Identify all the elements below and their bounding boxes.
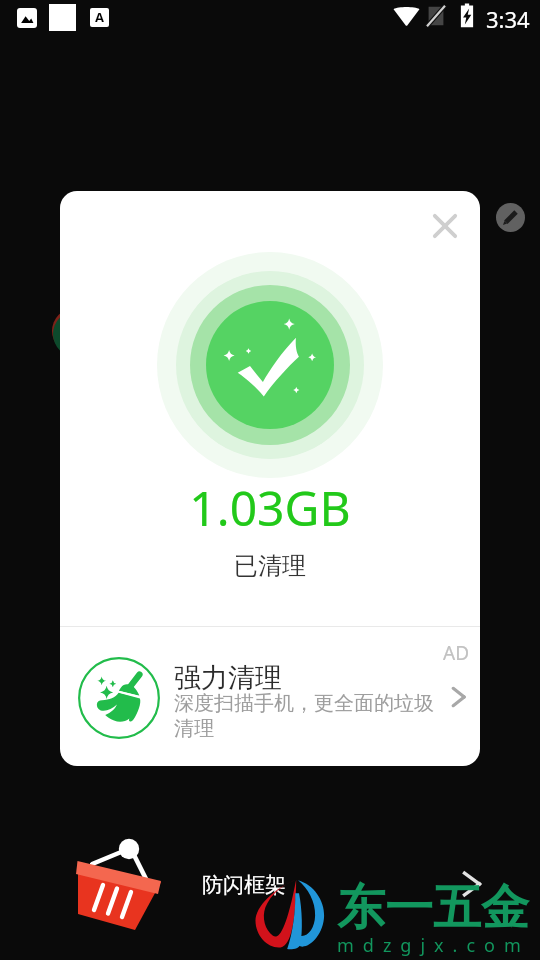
staticText: A [95, 8, 104, 26]
staticText: 清理 [174, 716, 214, 741]
staticText: mdzgjx.com [337, 933, 530, 958]
staticText: 深度扫描手机，更全面的垃圾 [174, 691, 434, 716]
button[interactable]: 防闪框架 [0, 824, 540, 950]
staticText: 已清理 [234, 551, 306, 581]
button[interactable]: 强力清理 [60, 627, 480, 766]
staticText: AD [443, 640, 470, 666]
button[interactable]: Edit [496, 203, 525, 232]
button[interactable]: Close [422, 203, 468, 249]
staticText: 防闪框架 [202, 872, 286, 898]
staticText: 强力清理 [174, 661, 282, 695]
staticText: 1.03GB [189, 475, 351, 540]
staticText: 东一五金 [337, 878, 529, 938]
staticText: 3:34 [486, 4, 530, 34]
